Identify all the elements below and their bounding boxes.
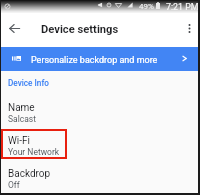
staticText: Backdrop bbox=[8, 168, 51, 180]
staticText: Device Info bbox=[8, 78, 49, 88]
staticText: Name bbox=[8, 102, 35, 114]
button[interactable]: Personalize backdrop and more bbox=[1, 47, 198, 71]
staticText: 7:21 PM bbox=[166, 2, 199, 12]
staticText: Wi-Fi bbox=[8, 135, 31, 147]
button[interactable]: More options bbox=[182, 13, 196, 47]
staticText: 49% bbox=[139, 2, 154, 11]
button[interactable]: Name bbox=[1, 102, 198, 135]
button[interactable]: Back bbox=[1, 13, 29, 47]
staticText: Off bbox=[8, 180, 20, 190]
staticText: Device settings bbox=[41, 23, 119, 36]
button[interactable]: Backdrop bbox=[1, 168, 198, 195]
staticText: Personalize backdrop and more bbox=[31, 55, 158, 66]
staticText: Your Network bbox=[8, 147, 60, 157]
button[interactable]: Wi-Fi bbox=[1, 135, 198, 168]
staticText: Salcast bbox=[8, 114, 36, 124]
